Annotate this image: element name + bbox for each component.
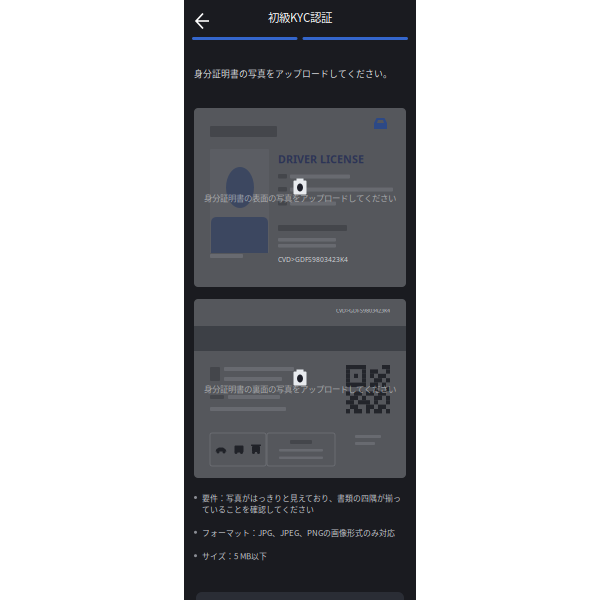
staticText: サイズ：5 MB以下: [202, 550, 267, 562]
staticText: 身分証明書の裏面の写真をアップロードしてください: [204, 382, 396, 395]
button[interactable]: CVD>GDFS9803423K4: [194, 299, 406, 478]
staticText: DRIVER LICENSE: [278, 152, 364, 166]
staticText: CVD>GDFS9803423K4: [278, 255, 348, 264]
staticText: 身分証明書の表面の写真をアップロードしてください: [204, 191, 396, 204]
button[interactable]: Back: [190, 5, 214, 29]
staticText: 初級KYC認証: [268, 9, 332, 25]
staticText: 要件：写真がはっきりと見えており、書類の四隅が揃っていることを確認してください: [202, 492, 401, 515]
button[interactable]: DRIVER LICENSE: [194, 108, 406, 287]
staticText: フォーマット：JPG、JPEG、PNGの画像形式のみ対応: [202, 527, 395, 538]
staticText: 身分証明書の写真をアップロードしてください。: [194, 67, 392, 80]
staticText: CVD>GDFS9803423K4: [336, 307, 390, 314]
